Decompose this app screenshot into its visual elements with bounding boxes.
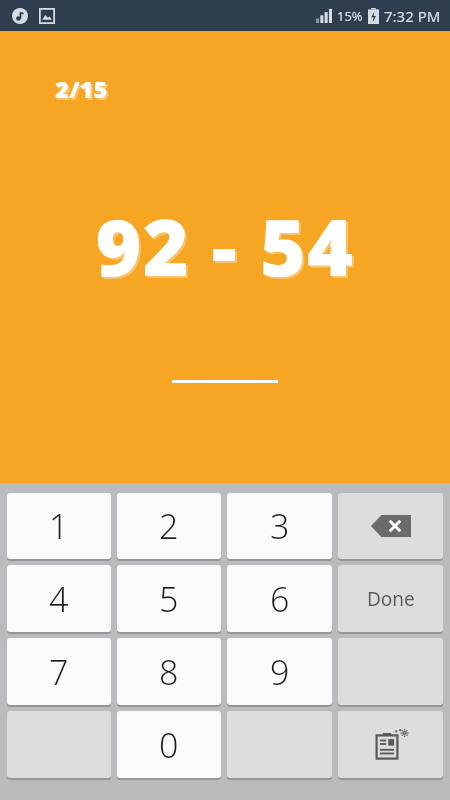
staticText: 5 xyxy=(159,576,179,622)
staticText: 6 xyxy=(270,576,290,622)
button[interactable]: Done xyxy=(338,565,443,632)
staticText: 92 - 54 xyxy=(97,195,357,301)
button[interactable]: 6 xyxy=(227,565,332,632)
staticText: 92 - 54 xyxy=(95,193,355,299)
staticText: 1 xyxy=(49,503,69,549)
button[interactable]: Backspace xyxy=(338,493,443,559)
staticText: 2/15 xyxy=(57,75,110,106)
staticText: 3 xyxy=(270,503,290,549)
button[interactable]: 8 xyxy=(117,638,221,705)
staticText: Done xyxy=(367,586,415,612)
button[interactable]: 3 xyxy=(227,493,332,559)
staticText: 2 xyxy=(159,503,179,549)
staticText: 9 xyxy=(270,649,290,695)
button[interactable]: Clipboard and settings xyxy=(338,711,443,778)
staticText: 7 xyxy=(49,649,69,695)
button[interactable]: 2 xyxy=(117,493,221,559)
staticText: 2/15 xyxy=(55,73,108,104)
button[interactable]: 9 xyxy=(227,638,332,705)
staticText: 0 xyxy=(159,722,179,768)
button[interactable]: 1 xyxy=(7,493,111,559)
staticText: 15% xyxy=(337,7,363,25)
button[interactable]: 5 xyxy=(117,565,221,632)
staticText: 7:32 PM xyxy=(384,6,441,26)
button[interactable]: 7 xyxy=(7,638,111,705)
staticText: 4 xyxy=(49,576,69,622)
button[interactable]: 0 xyxy=(117,711,221,778)
button[interactable]: 4 xyxy=(7,565,111,632)
staticText: 8 xyxy=(159,649,179,695)
